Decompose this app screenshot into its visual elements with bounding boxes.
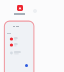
button[interactable]: Add: [25, 64, 28, 67]
button[interactable]: [7, 42, 32, 48]
button[interactable]: [7, 50, 32, 56]
button[interactable]: Account: [33, 9, 37, 13]
button[interactable]: App icon: [17, 5, 23, 11]
button[interactable]: [7, 36, 32, 42]
